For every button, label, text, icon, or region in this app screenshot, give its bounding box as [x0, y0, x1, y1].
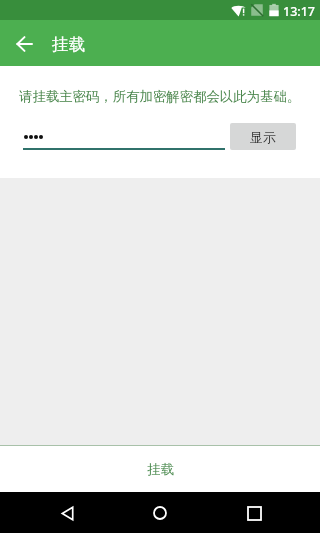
button[interactable]: Home	[140, 493, 180, 533]
button[interactable]: Back	[47, 493, 87, 533]
staticText: 挂载	[147, 461, 174, 478]
button[interactable]: Recents	[234, 493, 274, 533]
button[interactable]: Master password field	[23, 125, 225, 150]
staticText: 显示	[250, 129, 276, 145]
button[interactable]: 挂载	[0, 447, 320, 492]
button[interactable]: Back	[9, 28, 39, 58]
button[interactable]: 显示	[230, 123, 296, 150]
staticText: 请挂载主密码，所有加密解密都会以此为基础。	[19, 88, 301, 105]
staticText: 13:17	[283, 3, 316, 20]
staticText: 挂载	[52, 34, 85, 55]
